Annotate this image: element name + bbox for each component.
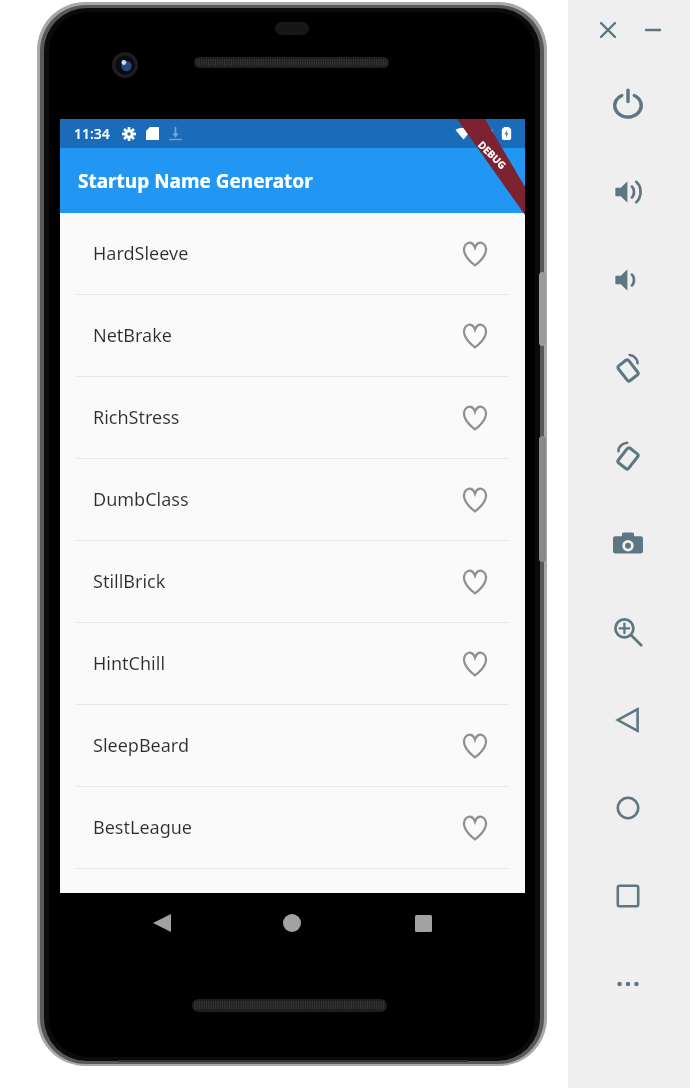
button[interactable]: Favorite HardSleeve (459, 238, 491, 270)
staticText: DEBUG (475, 138, 510, 172)
button[interactable]: Screenshot (600, 516, 656, 572)
staticText: DumbClass (93, 487, 189, 512)
button[interactable]: Volume down (600, 252, 656, 308)
button[interactable]: Favorite RichStress (459, 402, 491, 434)
button[interactable]: Zoom (600, 604, 656, 660)
staticText: HardSleeve (93, 241, 189, 266)
button[interactable]: DumbClass (60, 459, 525, 540)
staticText: StillBrick (93, 569, 166, 594)
staticText: 11:34 (74, 124, 110, 143)
button[interactable]: Rotate right (600, 428, 656, 484)
button[interactable]: Recents (401, 901, 445, 945)
button[interactable]: Favorite NetBrake (459, 320, 491, 352)
button[interactable]: Back (600, 692, 656, 748)
staticText: HintChill (93, 651, 166, 676)
button[interactable]: Close (592, 14, 624, 46)
button[interactable]: HardSleeve (60, 213, 525, 294)
button[interactable]: Power (600, 76, 656, 132)
button[interactable]: Home (600, 780, 656, 836)
button[interactable]: Rotate left (600, 340, 656, 396)
staticText: SleepBeard (93, 733, 189, 758)
button[interactable]: StillBrick (60, 541, 525, 622)
staticText: NetBrake (93, 323, 172, 348)
button[interactable]: Minimize (637, 14, 669, 46)
button[interactable]: Recents (600, 868, 656, 924)
button[interactable]: HintChill (60, 623, 525, 704)
button[interactable]: Back (140, 901, 184, 945)
button[interactable]: Favorite StillBrick (459, 566, 491, 598)
button[interactable]: Favorite SleepBeard (459, 730, 491, 762)
button[interactable]: Favorite BestLeague (459, 812, 491, 844)
button[interactable]: NetBrake (60, 295, 525, 376)
button[interactable]: Home (270, 901, 314, 945)
staticText: BestLeague (93, 815, 192, 840)
button[interactable]: RichStress (60, 377, 525, 458)
staticText: Startup Name Generator (78, 168, 313, 194)
button[interactable]: Favorite DumbClass (459, 484, 491, 516)
button[interactable]: BestLeague (60, 787, 525, 868)
button[interactable]: Volume up (600, 164, 656, 220)
button[interactable]: Favorite HintChill (459, 648, 491, 680)
button[interactable]: More (600, 956, 656, 1012)
button[interactable]: SleepBeard (60, 705, 525, 786)
staticText: RichStress (93, 405, 180, 430)
